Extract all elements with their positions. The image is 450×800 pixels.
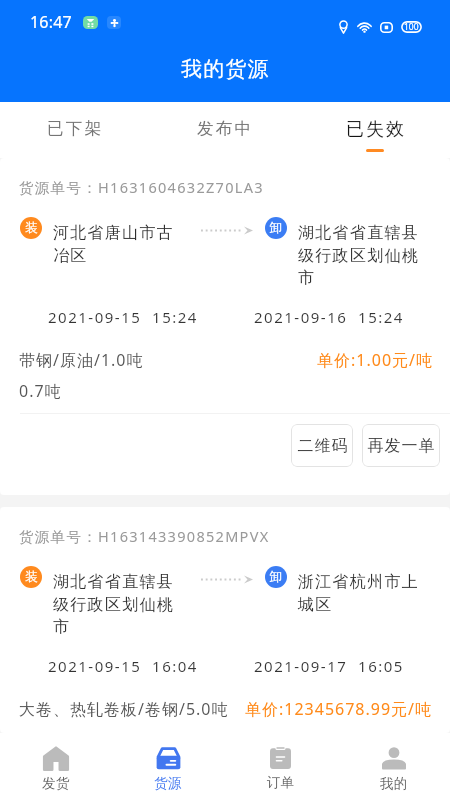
staticText: 已失效 xyxy=(345,118,405,141)
staticText: 货源单号：H1631604632Z70LA3 xyxy=(19,177,264,197)
staticText: 湖北省省直辖县级行政区划仙桃市 xyxy=(298,223,424,287)
staticText: 2021-09-15 15:24 xyxy=(48,307,254,327)
other: Wifi xyxy=(357,21,372,34)
button[interactable]: 我的 xyxy=(337,733,450,800)
staticText: 2021-09-17 16:05 xyxy=(254,656,404,676)
staticText: 16:47 xyxy=(30,11,72,33)
button[interactable]: 发货 xyxy=(0,733,112,800)
staticText: 发布中 xyxy=(197,118,254,139)
staticText: 再发一单 xyxy=(367,436,435,456)
button[interactable]: 货源 xyxy=(112,733,224,800)
staticText: 河北省唐山市古冶区 xyxy=(53,223,177,265)
button[interactable]: 订单 xyxy=(224,733,337,800)
other: Location xyxy=(338,20,349,34)
staticText: 装 xyxy=(25,220,38,236)
staticText: 装 xyxy=(25,569,38,585)
button[interactable]: 已下架 xyxy=(0,102,150,158)
staticText: 二维码 xyxy=(297,436,348,456)
staticText: 2021-09-16 15:24 xyxy=(254,307,404,327)
button[interactable]: 货源单号：H163143390852MPVX xyxy=(0,507,450,733)
staticText: 浙江省杭州市上城区 xyxy=(298,572,424,614)
staticText: 订单 xyxy=(267,774,295,791)
staticText: 0.7吨 xyxy=(19,380,62,402)
staticText: 带钢/原油/1.0吨 xyxy=(19,349,144,371)
staticText: 卸 xyxy=(270,569,283,585)
staticText: 货源 xyxy=(154,775,182,792)
staticText: 单价:1.00元/吨 xyxy=(317,349,433,371)
staticText: 我的 xyxy=(380,775,408,792)
staticText: 2021-09-15 16:04 xyxy=(48,656,254,676)
staticText: 单价:12345678.99元/吨 xyxy=(245,698,433,720)
button[interactable]: 已失效 xyxy=(300,102,450,158)
button[interactable]: 货源单号：H1631604632Z70LA3 xyxy=(0,158,450,495)
staticText: 大卷、热轧卷板/卷钢/5.0吨 xyxy=(19,698,229,720)
staticText: 货源单号：H163143390852MPVX xyxy=(19,526,270,546)
staticText: 卸 xyxy=(270,220,283,236)
button[interactable]: 二维码 xyxy=(291,424,353,467)
staticText: 已下架 xyxy=(47,118,104,139)
staticText: 100 xyxy=(404,21,419,33)
button[interactable]: 再发一单 xyxy=(362,424,440,467)
staticText: 湖北省省直辖县级行政区划仙桃市 xyxy=(53,572,177,636)
staticText: 我的货源 xyxy=(181,56,270,82)
staticText: 发货 xyxy=(42,775,70,792)
button[interactable]: 发布中 xyxy=(150,102,300,158)
